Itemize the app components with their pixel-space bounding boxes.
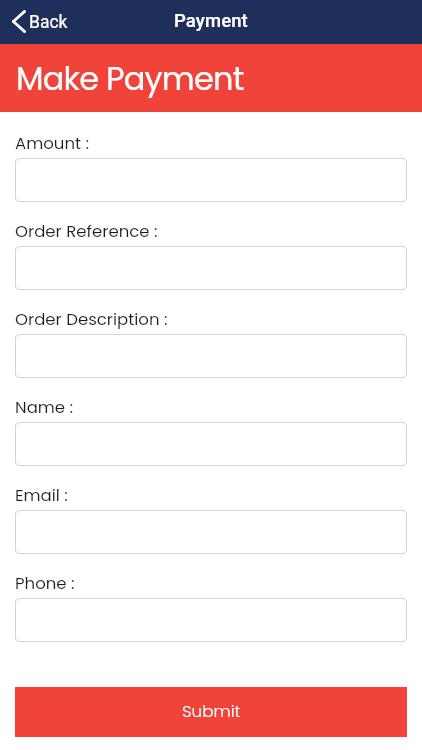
staticText: Back	[29, 12, 68, 33]
button[interactable]	[15, 510, 407, 554]
button[interactable]	[15, 158, 407, 202]
other: Back	[12, 10, 26, 33]
staticText: Email :	[15, 484, 68, 507]
button[interactable]	[15, 246, 407, 290]
staticText: Amount :	[15, 132, 89, 155]
staticText: Order Reference :	[15, 220, 158, 243]
staticText: Submit	[182, 699, 241, 723]
staticText: Name :	[15, 396, 74, 419]
staticText: Make Payment	[16, 56, 244, 101]
button[interactable]	[15, 422, 407, 466]
staticText: Phone :	[15, 572, 75, 595]
staticText: Payment	[174, 10, 248, 32]
staticText: Order Description :	[15, 308, 168, 331]
button[interactable]: Back	[0, 7, 80, 38]
button[interactable]: Submit	[15, 687, 407, 737]
button[interactable]	[15, 334, 407, 378]
button[interactable]	[15, 598, 407, 642]
